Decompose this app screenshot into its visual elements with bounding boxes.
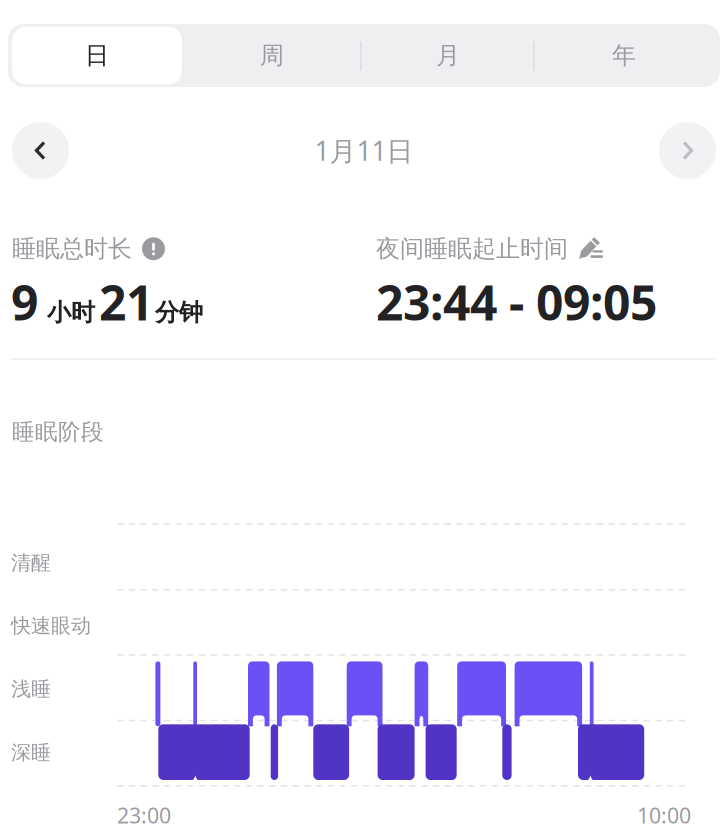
staticText: 睡眠总时长 — [12, 234, 132, 263]
staticText: 清醒 — [11, 550, 51, 575]
staticText: 21 — [99, 270, 153, 334]
button[interactable]: 日 — [12, 26, 182, 84]
staticText: 年 — [612, 41, 636, 70]
staticText: 深睡 — [11, 740, 51, 765]
staticText: 分钟 — [155, 298, 203, 327]
button[interactable]: Next day — [659, 122, 716, 179]
staticText: 夜间睡眠起止时间 — [376, 234, 568, 263]
staticText: 9 — [11, 270, 38, 334]
staticText: 23:44 - 09:05 — [376, 270, 657, 334]
button[interactable]: 年 — [536, 24, 712, 87]
staticText: 1月11日 — [314, 133, 413, 168]
staticText: 月 — [436, 41, 460, 70]
staticText: 睡眠阶段 — [12, 418, 104, 446]
staticText: 小时 — [47, 298, 95, 327]
button[interactable]: 月 — [360, 24, 536, 87]
button[interactable]: Previous day — [12, 122, 69, 179]
staticText: 周 — [260, 41, 284, 70]
staticText: 23:00 — [117, 801, 171, 829]
staticText: 快速眼动 — [11, 613, 91, 638]
staticText: 10:00 — [637, 801, 691, 829]
staticText: 日 — [85, 41, 109, 70]
staticText: 浅睡 — [11, 677, 51, 701]
button[interactable]: 周 — [184, 24, 360, 87]
